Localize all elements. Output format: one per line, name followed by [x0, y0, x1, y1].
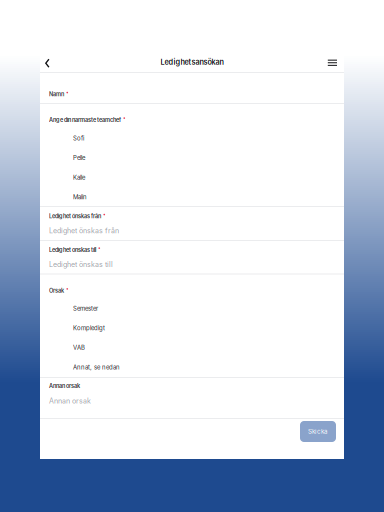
staticText: Sofi [73, 135, 84, 142]
button[interactable]: Sofi [49, 128, 335, 148]
staticText: Ledighet önskas till [49, 246, 96, 253]
button[interactable]: Skicka [300, 421, 336, 442]
staticText: Semester [73, 305, 98, 312]
button[interactable]: Ledighet önskas från [49, 219, 335, 235]
button[interactable]: Annan orsak [49, 389, 335, 405]
staticText: Ledighetsansökan [160, 58, 223, 66]
staticText: Annan orsak [49, 397, 91, 405]
button[interactable]: Pelle [49, 148, 335, 168]
button[interactable]: Back [40, 52, 59, 72]
button[interactable]: Malin [49, 187, 335, 207]
staticText: Ledighet önskas från [49, 226, 119, 235]
staticText: Kalle [73, 174, 85, 181]
button[interactable]: Semester [49, 299, 335, 318]
button[interactable]: Ledighet önskas till [49, 253, 335, 269]
button[interactable]: Kompledigt [49, 318, 335, 338]
staticText: Ledighet önskas från [49, 213, 101, 220]
staticText: Ledighet önskas till [49, 260, 113, 269]
button[interactable]: Annat, se nedan [49, 357, 335, 377]
staticText: Ange din närmaste teamchef [49, 116, 121, 123]
staticText: Kompledigt [73, 324, 105, 332]
staticText: Malin [73, 193, 87, 201]
staticText: Orsak [49, 287, 64, 294]
staticText: Namn [49, 91, 64, 98]
staticText: VAB [73, 344, 85, 351]
staticText: Annat, se nedan [73, 364, 120, 371]
button[interactable]: Kalle [49, 168, 335, 187]
staticText: Skicka [308, 428, 328, 435]
staticText: Annan orsak [49, 382, 80, 389]
staticText: Pelle [73, 154, 85, 161]
button[interactable]: Menu [319, 52, 344, 72]
button[interactable]: VAB [49, 338, 335, 357]
